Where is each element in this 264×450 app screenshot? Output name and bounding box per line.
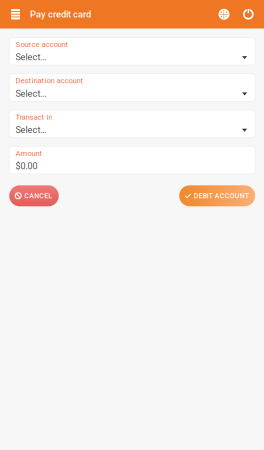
staticText: Select...: [15, 52, 46, 62]
staticText: Destination account: [15, 76, 83, 85]
staticText: CANCEL: [24, 192, 52, 200]
button[interactable]: Amount: [9, 146, 255, 174]
staticText: DEBIT ACCOUNT: [194, 192, 249, 200]
button[interactable]: CANCEL: [9, 185, 59, 206]
button[interactable]: Language: [215, 0, 233, 28]
staticText: Source account: [15, 40, 68, 49]
button[interactable]: Log out: [233, 0, 264, 28]
button[interactable]: Transact in: [9, 110, 255, 138]
staticText: Amount: [15, 149, 42, 158]
button[interactable]: Menu: [0, 0, 30, 28]
staticText: Pay credit card: [30, 9, 91, 20]
staticText: Transact in: [15, 112, 52, 122]
staticText: Select...: [15, 88, 46, 99]
button[interactable]: Destination account: [9, 74, 255, 101]
staticText: $0.00: [15, 161, 37, 171]
button[interactable]: DEBIT ACCOUNT: [179, 185, 255, 206]
button[interactable]: Source account: [9, 37, 255, 65]
staticText: Select...: [15, 124, 46, 135]
